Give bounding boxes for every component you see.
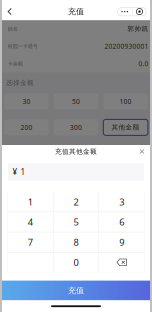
button[interactable]: 6	[99, 212, 144, 232]
button[interactable]: 1	[8, 192, 53, 212]
staticText: 300	[70, 123, 82, 132]
staticText: 姓名	[8, 26, 18, 32]
button[interactable]: 5	[53, 212, 99, 232]
button[interactable]: 200	[4, 119, 49, 135]
button[interactable]: 充值	[2, 281, 150, 300]
button[interactable]: 50	[54, 93, 98, 109]
button[interactable]: 4	[8, 212, 53, 232]
staticText: 8	[73, 236, 78, 248]
staticText: 校园一卡通号	[8, 43, 38, 50]
staticText: 0.0	[138, 59, 148, 68]
button[interactable]: More	[117, 7, 132, 16]
button[interactable]: 100	[103, 93, 148, 109]
button[interactable]: 其他金额	[103, 119, 148, 135]
staticText: 1	[20, 167, 25, 177]
button[interactable]: Delete	[99, 252, 144, 272]
staticText: 4	[28, 216, 33, 228]
staticText: 卡余额	[8, 60, 23, 67]
staticText: 选择金额	[6, 79, 34, 87]
staticText: 6	[119, 216, 124, 228]
button[interactable]: Back	[2, 4, 17, 20]
button[interactable]: 3	[99, 192, 144, 212]
button[interactable]: 2	[53, 192, 99, 212]
staticText: 充值	[68, 7, 84, 16]
staticText: 3	[119, 196, 124, 208]
staticText: 2	[73, 196, 78, 208]
staticText: 其他金额	[112, 123, 140, 131]
staticText: 充值其他金额	[55, 147, 97, 156]
staticText: 0	[73, 256, 78, 268]
button[interactable]: 0	[53, 252, 99, 272]
staticText: ¥	[12, 167, 17, 177]
staticText: 郭帅凯	[127, 25, 148, 33]
staticText: 充值	[68, 286, 84, 295]
staticText: 200	[20, 123, 32, 132]
staticText: 30	[22, 97, 30, 106]
staticText: 5	[73, 216, 78, 228]
staticText: 50	[72, 97, 80, 106]
staticText: 100	[120, 97, 132, 106]
button[interactable]: 300	[54, 119, 98, 135]
staticText: 7	[28, 236, 33, 248]
staticText: 9	[119, 236, 124, 248]
button[interactable]: 9	[99, 232, 144, 252]
button[interactable]: Close mini program	[132, 7, 146, 16]
staticText: 20200930001	[104, 42, 148, 51]
button[interactable]: 7	[8, 232, 53, 252]
button[interactable]: Close	[135, 145, 148, 158]
button[interactable]: 30	[4, 93, 49, 109]
staticText: 1	[28, 196, 33, 208]
button[interactable]: 8	[53, 232, 99, 252]
